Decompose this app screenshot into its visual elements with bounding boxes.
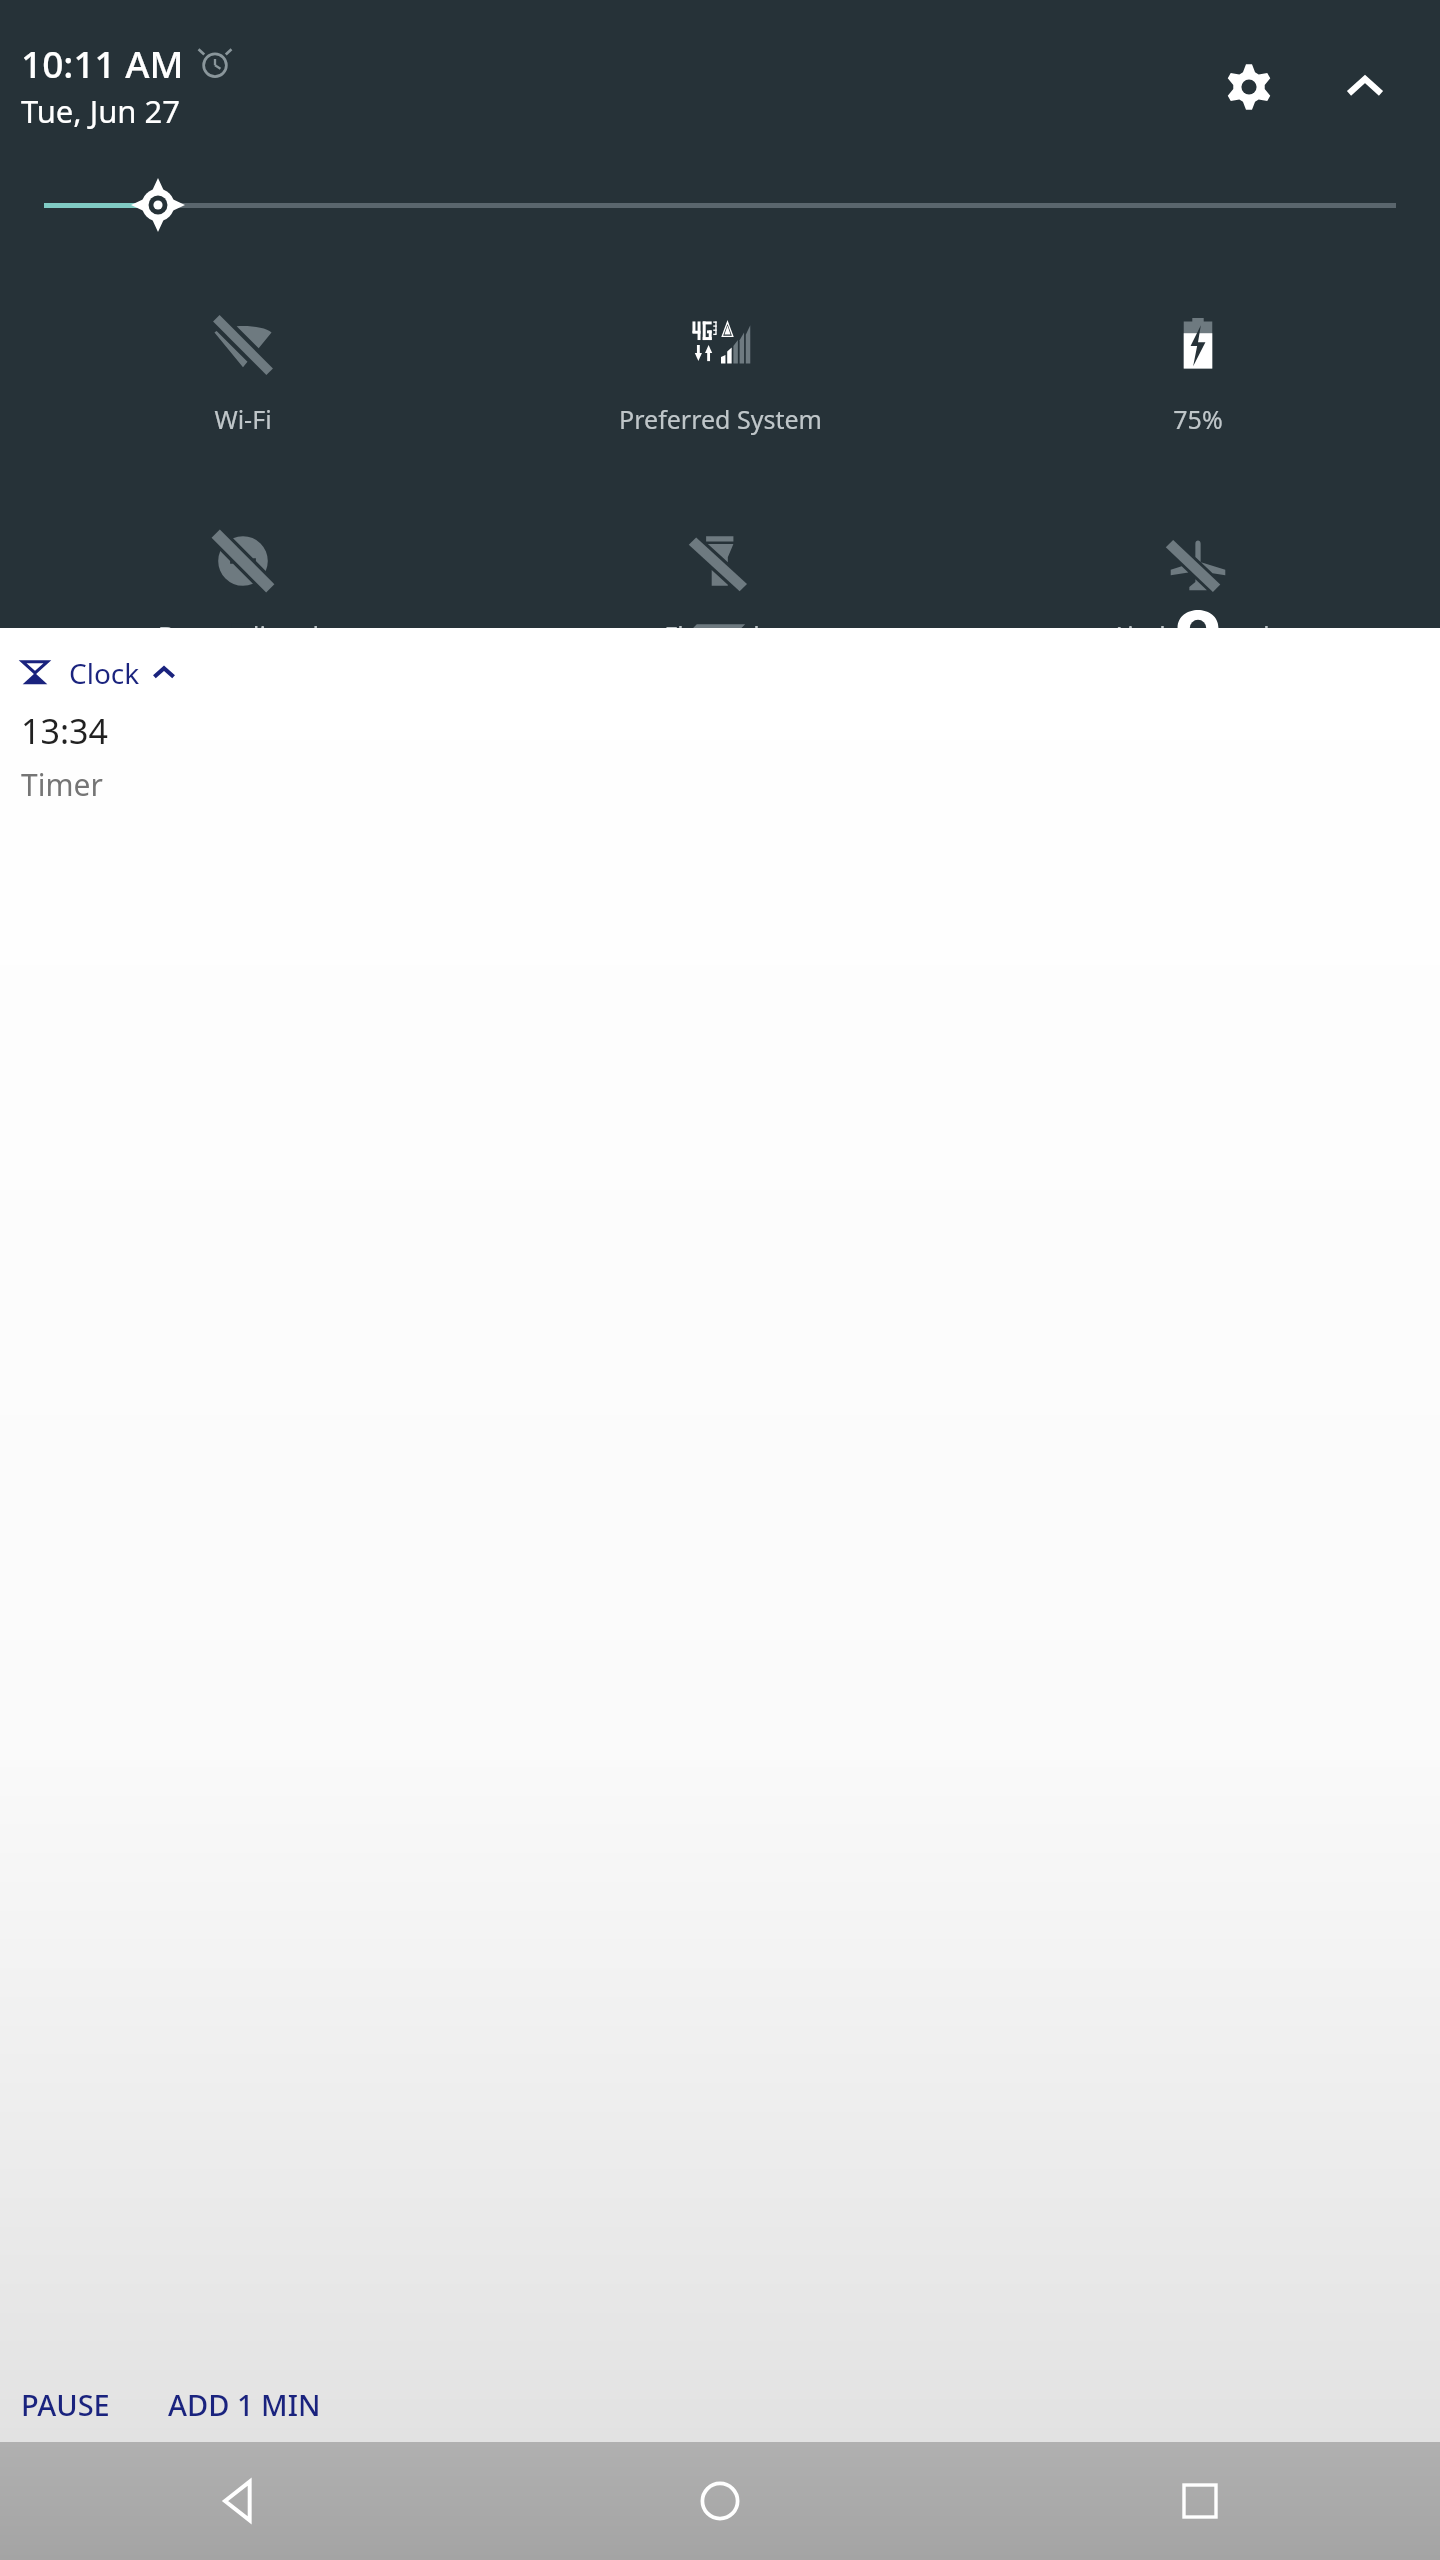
button[interactable]: ADD 1 MIN [154, 2375, 335, 2434]
button[interactable]: Back [0, 2442, 480, 2560]
staticText: ADD 1 MIN [168, 2385, 321, 2424]
button[interactable]: Flashlight [482, 518, 959, 628]
staticText: 13:34 [21, 708, 108, 754]
button[interactable]: Collapse [1330, 52, 1400, 122]
button[interactable]: Settings [1212, 50, 1286, 124]
button[interactable]: Brightness [0, 150, 1440, 260]
staticText: 10:11 AM [21, 38, 184, 88]
staticText: PAUSE [21, 2385, 110, 2424]
staticText: Preferred System [619, 402, 822, 436]
staticText: Flashlight [664, 618, 778, 628]
button[interactable]: Recent apps [960, 2442, 1440, 2560]
staticText: Wi-Fi [214, 402, 272, 436]
staticText: 75% [1173, 402, 1223, 436]
staticText: Do not disturb [158, 618, 328, 628]
staticText: Clock [69, 654, 140, 692]
button[interactable]: 75% [959, 302, 1436, 436]
button[interactable]: PAUSE [0, 2375, 128, 2434]
button[interactable]: Airplane mode [959, 518, 1436, 628]
staticText: Timer [21, 764, 103, 805]
staticText: Airplane mode [1111, 618, 1284, 628]
button[interactable]: Do not disturb [4, 518, 482, 628]
button[interactable]: Wi-Fi [4, 302, 482, 436]
staticText: Tue, Jun 27 [21, 90, 180, 132]
button[interactable]: Preferred System [482, 302, 959, 436]
button[interactable]: Home [480, 2442, 960, 2560]
button[interactable]: Clock [0, 650, 192, 696]
